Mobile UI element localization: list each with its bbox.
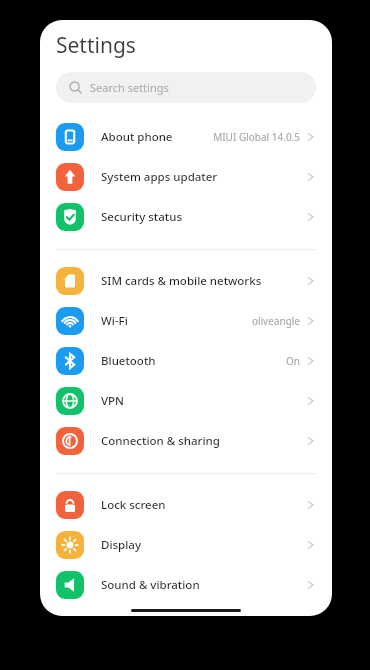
staticText: On <box>286 354 300 368</box>
button[interactable]: Connection & sharing <box>40 421 332 461</box>
staticText: MIUI Global 14.0.5 <box>213 130 300 144</box>
button[interactable]: Search settings <box>56 72 316 103</box>
staticText: Sound & vibration <box>101 577 306 593</box>
staticText: Bluetooth <box>101 353 286 369</box>
staticText: Security status <box>101 209 306 225</box>
staticText: SIM cards & mobile networks <box>101 273 306 289</box>
button[interactable]: VPN <box>40 381 332 421</box>
staticText: Wi-Fi <box>101 313 251 329</box>
button[interactable]: System apps updater <box>40 157 332 197</box>
staticText: oliveangle <box>251 314 300 328</box>
button[interactable]: Sound & vibration <box>40 565 332 605</box>
button[interactable]: About phone <box>40 117 332 157</box>
staticText: Connection & sharing <box>101 433 306 449</box>
button[interactable]: Lock screen <box>40 485 332 525</box>
staticText: VPN <box>101 393 306 409</box>
staticText: Display <box>101 537 306 553</box>
button[interactable]: Bluetooth <box>40 341 332 381</box>
staticText: Search settings <box>90 80 169 95</box>
staticText: Lock screen <box>101 497 306 513</box>
staticText: System apps updater <box>101 169 306 185</box>
staticText: Settings <box>56 31 136 60</box>
button[interactable]: Security status <box>40 197 332 237</box>
staticText: About phone <box>101 129 213 145</box>
button[interactable]: SIM cards & mobile networks <box>40 261 332 301</box>
button[interactable]: Display <box>40 525 332 565</box>
button[interactable]: Wi-Fi <box>40 301 332 341</box>
